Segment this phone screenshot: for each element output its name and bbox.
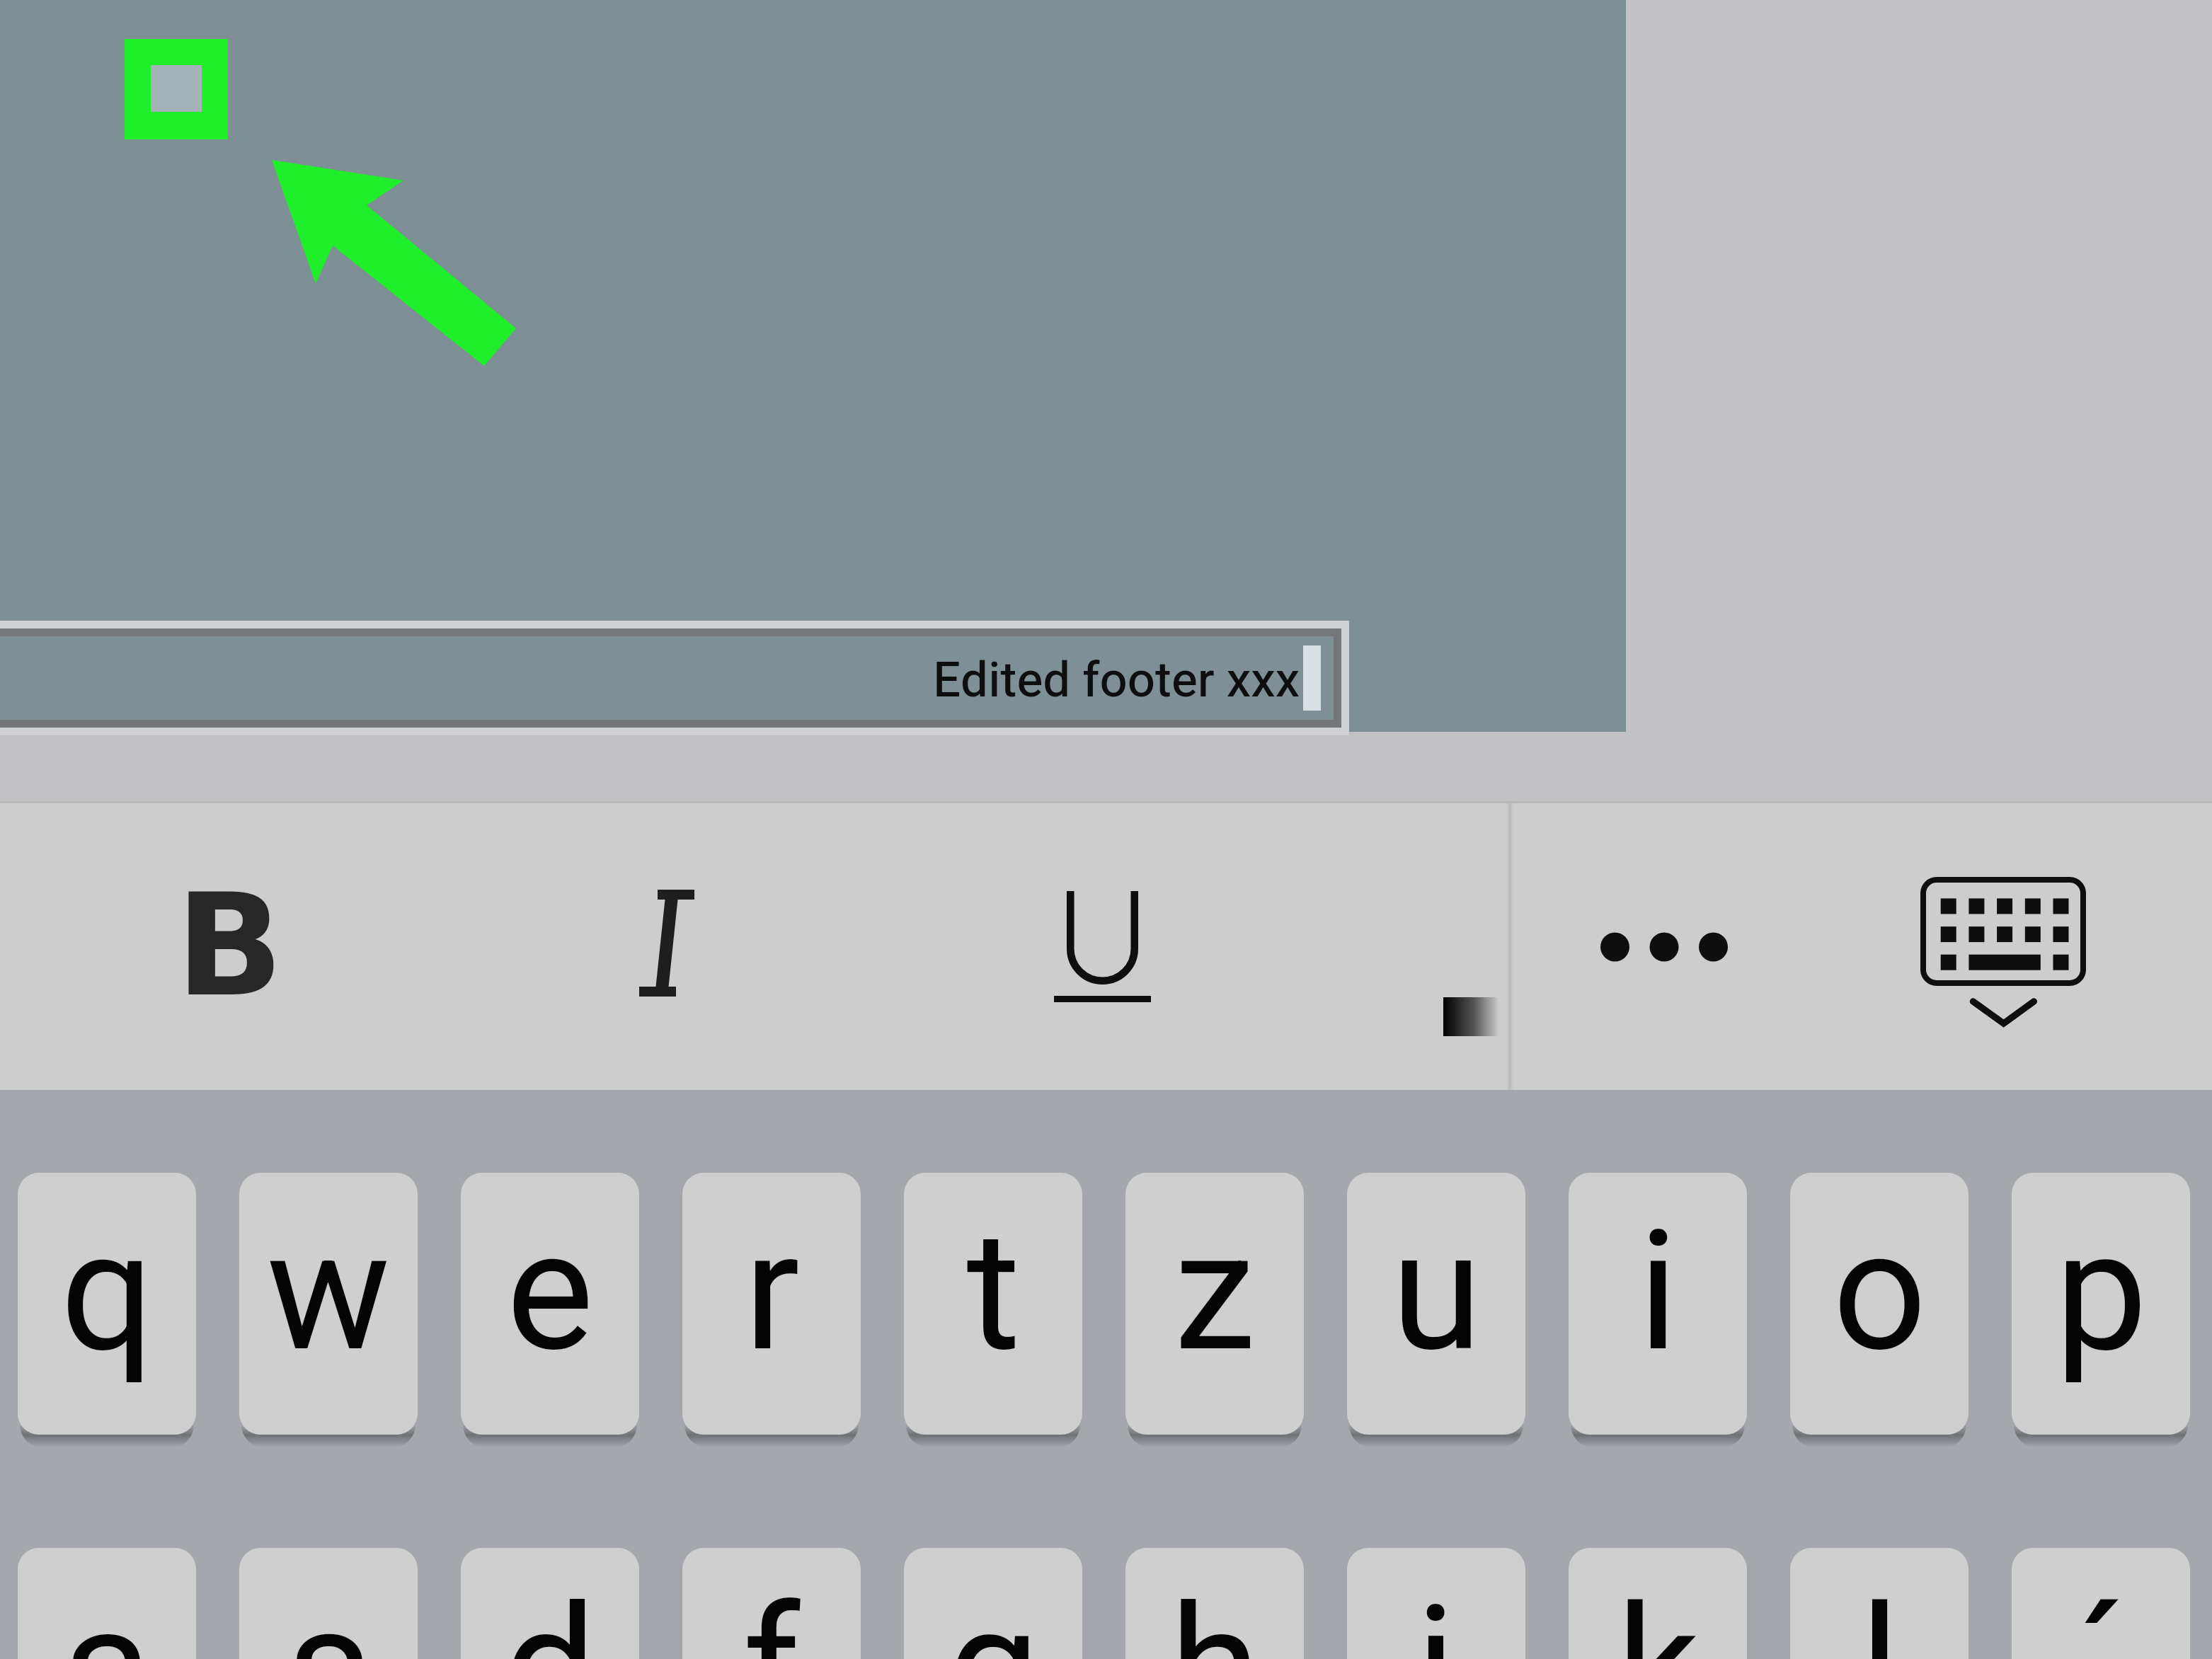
button[interactable]: o <box>1790 1173 1969 1435</box>
staticText: f <box>743 1571 801 1659</box>
button[interactable]: a <box>18 1548 196 1659</box>
staticText: j <box>1416 1571 1456 1659</box>
staticText: ´ <box>2075 1571 2127 1659</box>
staticText: u <box>1391 1195 1482 1389</box>
button[interactable]: B <box>81 803 379 1090</box>
button[interactable]: ´ <box>2012 1548 2190 1659</box>
button[interactable]: q <box>18 1173 196 1435</box>
staticText: e <box>506 1195 594 1389</box>
staticText: r <box>744 1195 800 1389</box>
button[interactable]: t <box>904 1173 1082 1435</box>
staticText: t <box>966 1195 1021 1389</box>
button[interactable]: Hide keyboard <box>1899 853 2100 1040</box>
staticText: s <box>286 1571 372 1659</box>
staticText: i <box>1638 1195 1678 1389</box>
staticText: a <box>62 1571 152 1659</box>
staticText: p <box>2055 1195 2148 1389</box>
button[interactable]: w <box>239 1173 418 1435</box>
button[interactable]: Underline <box>1048 888 1161 1012</box>
button[interactable]: k <box>1569 1548 1747 1659</box>
button[interactable]: z <box>1125 1173 1304 1435</box>
staticText: w <box>266 1195 391 1389</box>
staticText: q <box>60 1195 154 1389</box>
button[interactable]: j <box>1347 1548 1525 1659</box>
button[interactable]: u <box>1347 1173 1525 1435</box>
staticText: Edited footer xxx <box>933 645 1300 717</box>
button[interactable]: e <box>461 1173 639 1435</box>
staticText: o <box>1833 1195 1927 1389</box>
button[interactable]: f <box>682 1548 861 1659</box>
staticText: d <box>503 1571 597 1659</box>
button[interactable]: h <box>1125 1548 1304 1659</box>
staticText: l <box>1859 1571 1900 1659</box>
button[interactable]: s <box>239 1548 418 1659</box>
button[interactable]: g <box>904 1548 1082 1659</box>
staticText: g <box>947 1571 1040 1659</box>
button[interactable]: d <box>461 1548 639 1659</box>
staticText: B <box>176 863 284 1028</box>
button[interactable]: Edited footer xxx <box>0 636 1334 720</box>
button[interactable]: l <box>1790 1548 1969 1659</box>
button[interactable]: More options <box>1543 803 1784 1090</box>
button[interactable]: p <box>2012 1173 2190 1435</box>
button[interactable]: Italic <box>623 878 715 1005</box>
staticText: k <box>1616 1571 1700 1659</box>
staticText: z <box>1174 1195 1256 1389</box>
button[interactable]: i <box>1569 1173 1747 1435</box>
staticText: h <box>1169 1571 1261 1659</box>
button[interactable]: r <box>682 1173 861 1435</box>
